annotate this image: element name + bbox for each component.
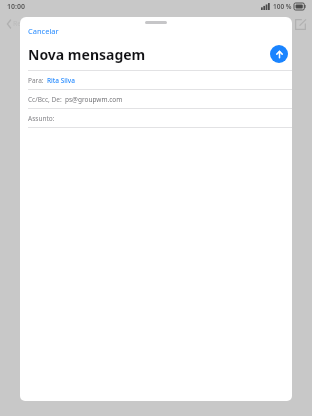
staticText: Nova mensagem (28, 45, 146, 64)
button[interactable]: Compose (292, 16, 308, 32)
staticText: 100 % (273, 2, 292, 11)
button[interactable]: Send (270, 45, 288, 63)
staticText: Para: (28, 76, 44, 85)
staticText: Rita Silva (47, 76, 75, 85)
button[interactable]: Cc/Bcc, De: (20, 90, 292, 108)
button[interactable]: Assunto: (20, 109, 292, 127)
staticText: 10:00 (7, 2, 25, 12)
button[interactable]: Para: (20, 71, 292, 89)
button[interactable]: Cancelar (25, 25, 62, 37)
staticText: ps@groupwm.com (65, 95, 123, 104)
staticText: Cancelar (28, 26, 59, 36)
staticText: Assunto: (28, 114, 55, 123)
staticText: Re (13, 19, 22, 29)
button[interactable]: Re (5, 17, 24, 31)
staticText: Cc/Bcc, De: (28, 95, 62, 104)
